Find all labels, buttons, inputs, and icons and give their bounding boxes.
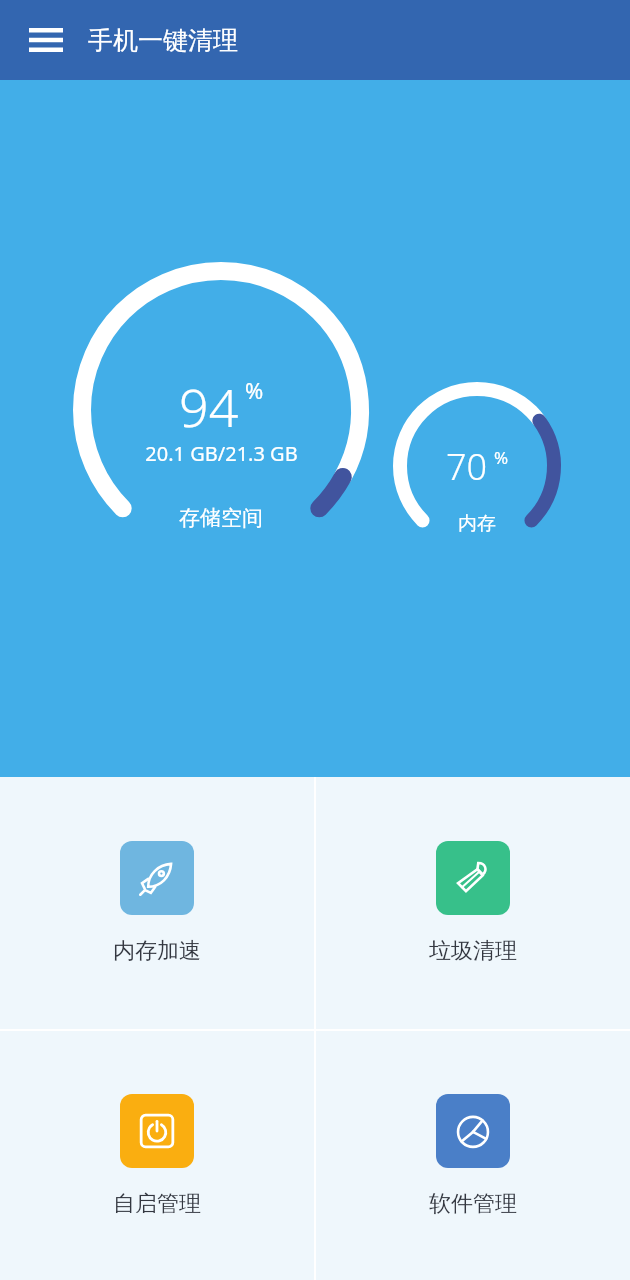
staticText: 内存加速 bbox=[113, 937, 201, 965]
button[interactable]: Menu bbox=[24, 18, 68, 62]
staticText: 20.1 GB/21.3 GB bbox=[145, 440, 298, 467]
staticText: % bbox=[245, 375, 264, 405]
staticText: % bbox=[494, 446, 509, 469]
staticText: 94 bbox=[179, 371, 239, 442]
staticText: 内存 bbox=[458, 512, 496, 536]
button[interactable]: 内存加速 bbox=[0, 777, 314, 1029]
button[interactable]: 软件管理 bbox=[316, 1031, 630, 1280]
staticText: 手机一键清理 bbox=[88, 25, 238, 56]
staticText: 70 bbox=[446, 442, 488, 491]
staticText: 自启管理 bbox=[113, 1190, 201, 1218]
staticText: 垃圾清理 bbox=[429, 937, 517, 965]
button[interactable]: 垃圾清理 bbox=[316, 777, 630, 1029]
staticText: 存储空间 bbox=[179, 505, 263, 531]
button[interactable]: 自启管理 bbox=[0, 1031, 314, 1280]
staticText: 软件管理 bbox=[429, 1190, 517, 1218]
